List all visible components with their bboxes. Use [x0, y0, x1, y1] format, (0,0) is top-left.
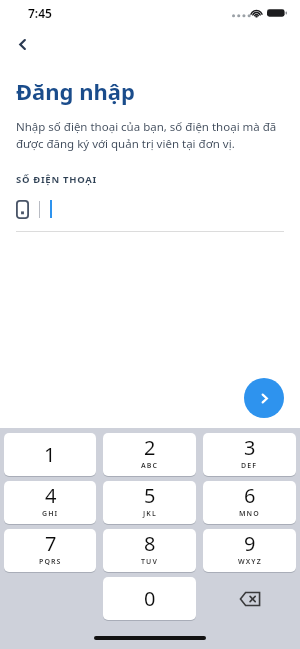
staticText: 4: [45, 482, 57, 509]
staticText: 2: [144, 434, 156, 461]
button[interactable]: 3: [203, 433, 296, 476]
staticText: 6: [244, 482, 256, 509]
staticText: SỐ ĐIỆN THOẠI: [16, 173, 97, 186]
button[interactable]: 2: [103, 433, 196, 476]
button[interactable]: 0: [103, 577, 196, 620]
button[interactable]: 7: [4, 529, 96, 572]
staticText: MNO: [239, 509, 260, 519]
staticText: 5: [144, 482, 156, 509]
button[interactable]: 8: [103, 529, 196, 572]
button[interactable]: Backspace: [203, 577, 296, 620]
staticText: JKL: [143, 509, 157, 519]
staticText: 1: [44, 441, 56, 468]
button[interactable]: 9: [203, 529, 296, 572]
staticText: DEF: [241, 461, 258, 471]
staticText: 8: [144, 530, 156, 557]
button[interactable]: 6: [203, 481, 296, 524]
staticText: ABC: [141, 461, 159, 471]
staticText: 9: [244, 530, 256, 557]
button[interactable]: 5: [103, 481, 196, 524]
staticText: TUV: [141, 557, 158, 567]
staticText: 7:45: [28, 5, 52, 21]
staticText: PQRS: [39, 557, 62, 567]
button[interactable]: Back: [5, 27, 39, 61]
staticText: 3: [244, 434, 256, 461]
button[interactable]: 1: [4, 433, 96, 476]
staticText: 0: [144, 585, 156, 612]
staticText: Nhập số điện thoại của bạn, số điện thoạ…: [16, 119, 277, 152]
staticText: 7: [45, 530, 57, 557]
staticText: Đăng nhập: [16, 76, 135, 106]
staticText: WXYZ: [238, 557, 262, 567]
button[interactable]: Continue: [244, 378, 284, 418]
staticText: GHI: [42, 509, 59, 519]
button[interactable]: 4: [4, 481, 96, 524]
